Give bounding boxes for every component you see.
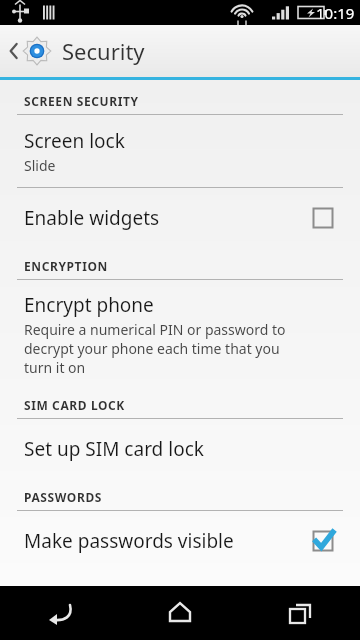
staticText: Set up SIM card lock (24, 436, 204, 462)
staticText: Enable widgets (24, 205, 312, 231)
button[interactable]: Set up SIM card lock (0, 419, 360, 479)
staticText: Encrypt phone (24, 292, 154, 318)
staticText: Security (62, 36, 145, 66)
button[interactable]: Screen lock (0, 115, 360, 187)
staticText: ENCRYPTION (24, 258, 108, 274)
staticText: Require a numerical PIN or password to d… (24, 320, 286, 377)
staticText: SCREEN SECURITY (24, 93, 139, 109)
staticText: PASSWORDS (24, 489, 103, 505)
staticText: Slide (24, 156, 56, 175)
staticText: Make passwords visible (24, 528, 312, 554)
button[interactable]: Back (0, 25, 360, 77)
staticText: Screen lock (24, 128, 125, 154)
staticText: SIM CARD LOCK (24, 397, 125, 413)
button[interactable]: Home (120, 586, 240, 640)
button[interactable]: Back (0, 586, 120, 640)
button[interactable]: Make passwords visible (0, 511, 360, 571)
button[interactable]: Encrypt phone (0, 280, 360, 387)
button[interactable]: Enable widgets (0, 188, 360, 248)
button[interactable]: Recent apps (240, 586, 360, 640)
staticText: 10:19 (316, 3, 355, 23)
